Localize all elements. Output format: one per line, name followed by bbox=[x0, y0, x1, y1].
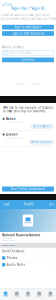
staticText: Allow Motion bbox=[33, 125, 52, 128]
button[interactable]: Audio Notes bbox=[0, 261, 56, 268]
staticText: Privacy Policy bbox=[30, 83, 40, 85]
staticText: Create an account to save your trips, ge… bbox=[0, 13, 55, 20]
staticText: NATIONAL bbox=[24, 222, 32, 224]
button[interactable]: Sign in with Apple bbox=[2, 25, 54, 30]
staticText: August 20 – 24, 2024 bbox=[2, 239, 16, 241]
staticText: Sign Up / Sign In bbox=[11, 5, 45, 11]
staticText: Washington, D.C. bbox=[2, 237, 12, 239]
staticText: Location bbox=[6, 133, 18, 136]
staticText: Edit bbox=[49, 203, 54, 206]
staticText: Close bbox=[4, 3, 12, 6]
staticText: Continue bbox=[21, 58, 35, 62]
button[interactable]: Terms of Use bbox=[15, 83, 24, 85]
button[interactable]: Quick Checkouts bbox=[0, 248, 56, 254]
button[interactable]: Search bbox=[11, 288, 22, 300]
button[interactable]: Account bbox=[45, 288, 56, 300]
staticText: › bbox=[53, 256, 54, 260]
staticText: Motion bbox=[6, 117, 16, 121]
staticText: Sign in with Facebook bbox=[12, 32, 43, 35]
staticText: › bbox=[53, 249, 54, 253]
staticText: Profile bbox=[24, 203, 34, 206]
button[interactable]: Allow Motion bbox=[32, 125, 53, 128]
staticText: BUSINESS PROFILE bbox=[2, 244, 15, 246]
staticText: Mobile number bbox=[2, 45, 24, 49]
staticText: We'd like to use a couple of features to… bbox=[3, 106, 53, 113]
button[interactable]: Home bbox=[0, 288, 11, 300]
staticText: National Business Summit bbox=[2, 233, 40, 237]
staticText: ‹ bbox=[2, 1, 4, 8]
button[interactable]: Allow Location bbox=[30, 140, 53, 144]
staticText: ‹ Back bbox=[2, 203, 9, 206]
staticText: Audio Notes bbox=[7, 263, 25, 266]
staticText: Your Profile Looks Great bbox=[11, 187, 45, 191]
button[interactable]: Sign in with Facebook bbox=[2, 31, 54, 36]
staticText: Photos bbox=[7, 256, 17, 260]
button[interactable]: Photos bbox=[0, 255, 56, 261]
staticText: › bbox=[53, 263, 54, 266]
button[interactable]: Privacy Policy bbox=[30, 83, 40, 85]
button[interactable]: Your Profile Looks Great bbox=[2, 186, 54, 191]
staticText: To measure your activity bbox=[6, 121, 23, 123]
button[interactable]: ‹ Back bbox=[0, 203, 9, 206]
button[interactable]: ‹ bbox=[0, 0, 12, 8]
button[interactable]: Edit bbox=[49, 203, 56, 206]
staticText: Allow Location bbox=[31, 140, 52, 144]
button[interactable]: Trips bbox=[22, 288, 34, 300]
button[interactable]: Continue bbox=[2, 57, 54, 62]
staticText: Terms of Use bbox=[15, 83, 24, 85]
staticText: +1 bbox=[3, 51, 7, 54]
button[interactable]: Saved bbox=[34, 288, 45, 300]
staticText: (555) 123-4567 bbox=[9, 51, 33, 54]
staticText: Sign in with Apple bbox=[14, 25, 41, 29]
staticText: Quick Checkouts bbox=[2, 249, 24, 253]
